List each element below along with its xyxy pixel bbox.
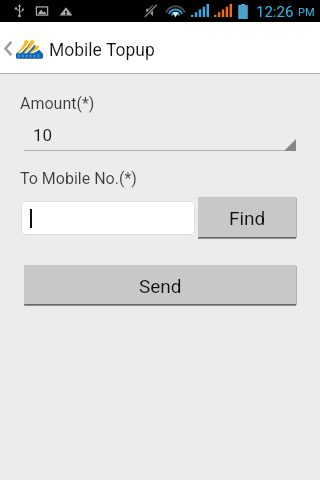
staticText: Find	[229, 207, 266, 229]
staticText: To Mobile No.(*)	[20, 169, 137, 188]
staticText: Send	[139, 275, 182, 297]
button[interactable]: Navigate up	[0, 22, 47, 73]
staticText: PM	[298, 6, 315, 19]
staticText: 10	[33, 125, 53, 145]
button[interactable]: 10	[24, 123, 296, 151]
staticText: Amount(*)	[20, 94, 95, 113]
staticText: 12:26	[256, 3, 294, 21]
staticText: Mobile Topup	[49, 40, 155, 61]
button[interactable]: Send	[24, 265, 297, 306]
button[interactable]: Mobile number input	[21, 201, 195, 235]
button[interactable]: Find	[198, 197, 297, 239]
